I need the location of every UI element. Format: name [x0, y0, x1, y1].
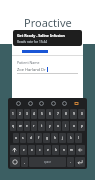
staticText: s — [22, 136, 24, 140]
staticText: 4 — [33, 112, 35, 116]
staticText: f — [38, 136, 40, 140]
button[interactable]: i — [62, 121, 69, 131]
staticText: 0 — [81, 112, 83, 116]
staticText: y — [49, 124, 51, 128]
button[interactable]: . — [67, 157, 74, 167]
staticText: Zoe Harland Dr — [17, 67, 46, 72]
staticText: Patient Name — [17, 60, 40, 65]
button[interactable]: 5 — [38, 109, 45, 119]
staticText: b — [55, 148, 57, 152]
staticText: 6 — [49, 112, 51, 116]
staticText: d — [30, 136, 32, 140]
staticText: z — [23, 148, 25, 152]
button[interactable]: y — [46, 121, 53, 131]
staticText: c — [39, 148, 41, 152]
button[interactable]: Get Ready - Saline Infusion — [13, 30, 82, 46]
button[interactable]: a — [13, 133, 19, 143]
staticText: a — [15, 136, 17, 140]
button[interactable]: 9 — [70, 109, 77, 119]
staticText: , — [24, 160, 25, 164]
button[interactable]: q — [10, 121, 16, 131]
staticText: 3 — [26, 112, 28, 116]
button[interactable]: Shift — [10, 145, 19, 155]
button[interactable]: z — [20, 145, 27, 155]
button[interactable]: 3 — [24, 109, 30, 119]
button[interactable]: Suggestion 3 — [39, 101, 44, 106]
staticText: w — [19, 124, 22, 128]
button[interactable]: Backspace — [76, 145, 85, 155]
button[interactable]: d — [27, 133, 34, 143]
staticText: r — [33, 124, 35, 128]
button[interactable]: n — [60, 145, 67, 155]
button[interactable]: w — [17, 121, 23, 131]
staticText: v — [47, 148, 49, 152]
button[interactable]: 6 — [46, 109, 53, 119]
button[interactable]: r — [31, 121, 37, 131]
staticText: Ready rate for 15:44 — [17, 40, 48, 43]
staticText: 9 — [73, 112, 75, 116]
staticText: n — [63, 148, 65, 152]
button[interactable]: Enter — [75, 157, 85, 167]
button[interactable]: Suggestion 2 — [28, 101, 33, 106]
button[interactable]: x — [28, 145, 35, 155]
button[interactable]: Suggestion 5 — [62, 101, 67, 106]
staticText: l — [78, 136, 79, 140]
button[interactable]: 1 — [10, 109, 16, 119]
button[interactable]: b — [52, 145, 59, 155]
button[interactable]: Suggestion 4 — [51, 101, 56, 106]
staticText: k — [70, 136, 72, 140]
button[interactable]: 0 — [78, 109, 85, 119]
button[interactable]: 8 — [62, 109, 69, 119]
button[interactable]: j — [59, 133, 66, 143]
staticText: m — [70, 148, 73, 152]
button[interactable]: k — [67, 133, 74, 143]
staticText: t — [41, 124, 43, 128]
button[interactable]: s — [20, 133, 26, 143]
button[interactable]: o — [70, 121, 77, 131]
button[interactable]: c — [36, 145, 43, 155]
button[interactable]: v — [44, 145, 51, 155]
button[interactable]: f — [35, 133, 42, 143]
staticText: e — [26, 124, 28, 128]
button[interactable]: Keyboard settings — [74, 101, 79, 106]
button[interactable]: t — [38, 121, 45, 131]
staticText: Proactive — [24, 15, 72, 30]
staticText: x — [31, 148, 33, 152]
staticText: Get Ready - Saline Infusion — [17, 33, 65, 38]
button[interactable]: u — [54, 121, 61, 131]
button[interactable]: 4 — [31, 109, 37, 119]
button[interactable]: p — [78, 121, 85, 131]
staticText: space — [44, 160, 52, 164]
button[interactable]: l — [75, 133, 82, 143]
staticText: 5 — [41, 112, 43, 116]
staticText: u — [57, 124, 59, 128]
button[interactable]: m — [68, 145, 75, 155]
button[interactable]: h — [51, 133, 58, 143]
staticText: 1 — [12, 112, 14, 116]
staticText: q — [12, 124, 14, 128]
staticText: h — [54, 136, 56, 140]
staticText: g — [46, 136, 48, 140]
staticText: 7 — [57, 112, 59, 116]
button[interactable]: g — [43, 133, 50, 143]
staticText: 8 — [65, 112, 67, 116]
button[interactable]: Suggestion 1 — [16, 101, 21, 106]
staticText: . — [70, 160, 71, 164]
staticText: o — [73, 124, 75, 128]
button[interactable]: 7 — [54, 109, 61, 119]
staticText: j — [62, 136, 63, 140]
staticText: 2 — [19, 112, 21, 116]
staticText: p — [81, 124, 83, 128]
button[interactable]: 2 — [17, 109, 23, 119]
button[interactable]: space — [29, 157, 66, 167]
button[interactable]: e — [24, 121, 30, 131]
button[interactable]: Emoji — [10, 157, 20, 167]
staticText: i — [65, 124, 66, 128]
button[interactable]: , — [21, 157, 28, 167]
